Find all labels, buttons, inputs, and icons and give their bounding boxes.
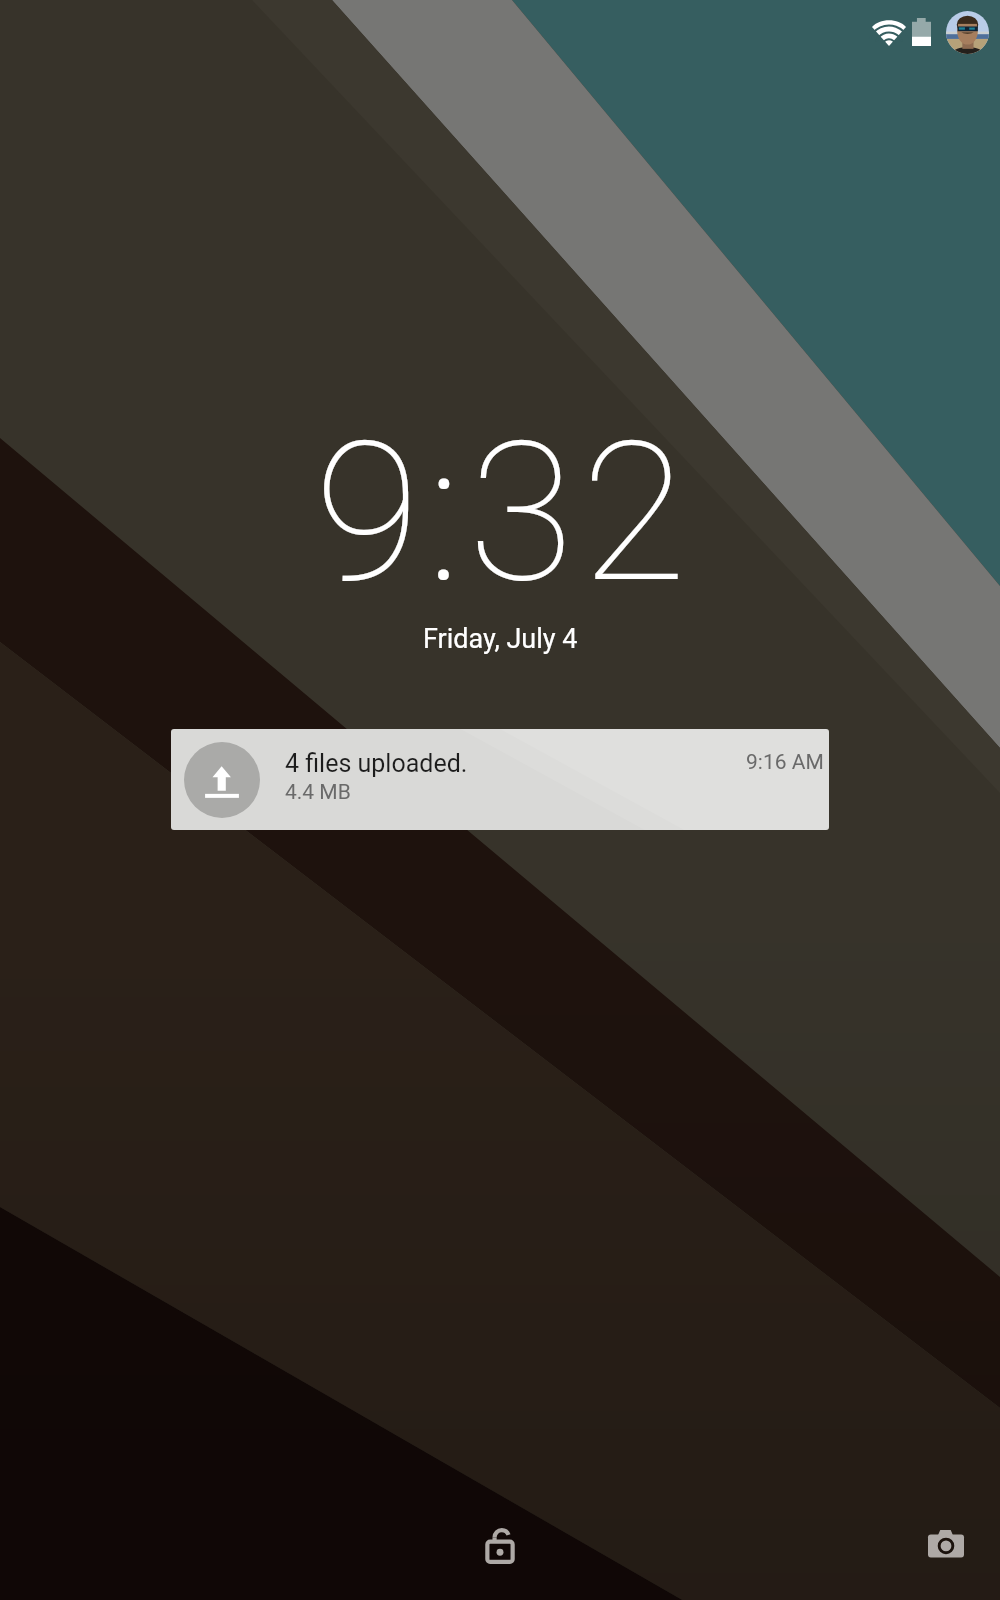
staticText: 9:32	[314, 400, 694, 626]
other: Battery	[912, 18, 931, 46]
staticText: 9:16 AM	[746, 750, 824, 775]
staticText: Friday, July 4	[423, 623, 578, 655]
button[interactable]: Camera	[898, 1496, 994, 1592]
button[interactable]: Profile	[946, 11, 989, 54]
button[interactable]: 4 files uploaded.	[171, 729, 829, 830]
staticText: 4.4 MB	[285, 780, 351, 805]
other: Wi-Fi signal	[872, 19, 906, 46]
button[interactable]: Unlock	[452, 1496, 548, 1592]
staticText: 4 files uploaded.	[285, 749, 468, 778]
